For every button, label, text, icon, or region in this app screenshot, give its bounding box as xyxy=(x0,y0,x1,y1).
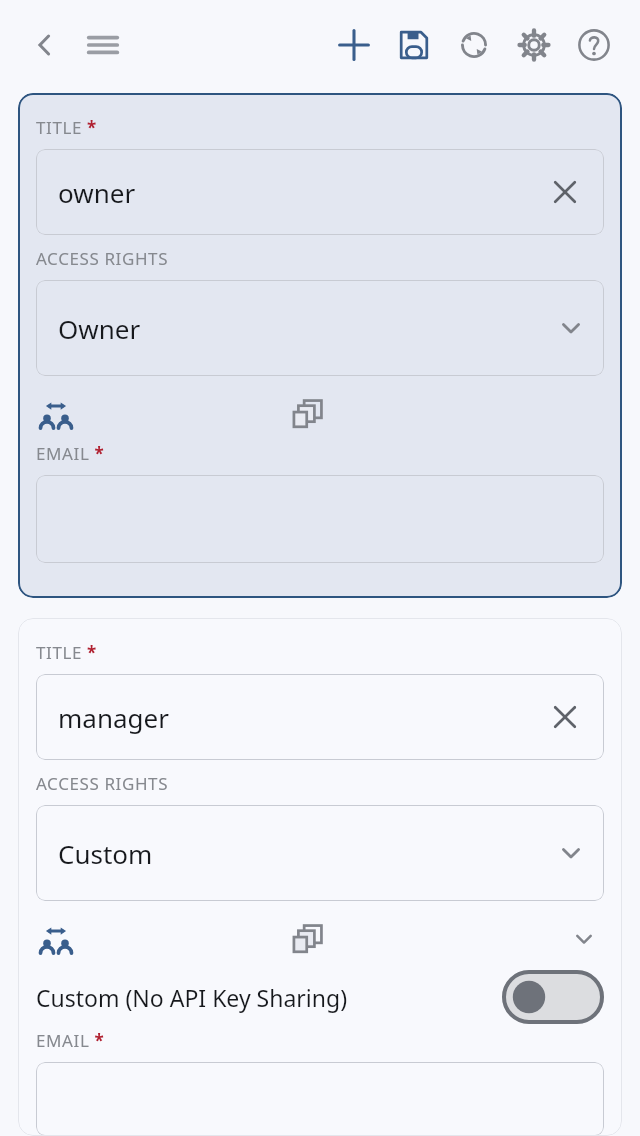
button[interactable] xyxy=(36,1062,604,1136)
button[interactable]: TITLE * xyxy=(18,93,622,598)
button[interactable]: Expand xyxy=(564,919,604,959)
button[interactable]: Owner xyxy=(36,280,604,376)
button[interactable]: Clear xyxy=(548,175,582,209)
button[interactable] xyxy=(36,475,604,563)
button[interactable]: Settings xyxy=(508,19,560,71)
button[interactable]: Menu xyxy=(80,22,126,68)
button[interactable]: manager xyxy=(36,674,604,760)
button[interactable]: owner xyxy=(36,149,604,235)
button[interactable]: Help xyxy=(568,19,620,71)
button[interactable]: Toggle custom sharing xyxy=(502,970,604,1024)
staticText: Custom (No API Key Sharing) xyxy=(36,982,348,1013)
button[interactable]: Save xyxy=(388,19,440,71)
button[interactable]: TITLE * xyxy=(18,618,622,1136)
button[interactable]: Add xyxy=(328,19,380,71)
button[interactable]: Share users xyxy=(36,919,76,959)
staticText: Custom xyxy=(58,836,153,871)
staticText: EMAIL * xyxy=(36,1029,105,1052)
button[interactable]: Custom xyxy=(36,805,604,901)
button[interactable]: Share users xyxy=(36,394,76,434)
staticText: Owner xyxy=(58,311,141,346)
button[interactable]: Back xyxy=(22,22,68,68)
staticText: EMAIL * xyxy=(36,442,105,465)
staticText: TITLE * xyxy=(36,116,97,139)
staticText: ACCESS RIGHTS xyxy=(36,247,169,270)
staticText: ACCESS RIGHTS xyxy=(36,772,169,795)
button[interactable]: Duplicate xyxy=(288,394,328,434)
button[interactable]: Clear xyxy=(548,700,582,734)
staticText: owner xyxy=(58,175,136,210)
button[interactable]: Duplicate xyxy=(288,919,328,959)
staticText: manager xyxy=(58,700,169,735)
button[interactable]: Refresh xyxy=(448,19,500,71)
staticText: TITLE * xyxy=(36,641,97,664)
